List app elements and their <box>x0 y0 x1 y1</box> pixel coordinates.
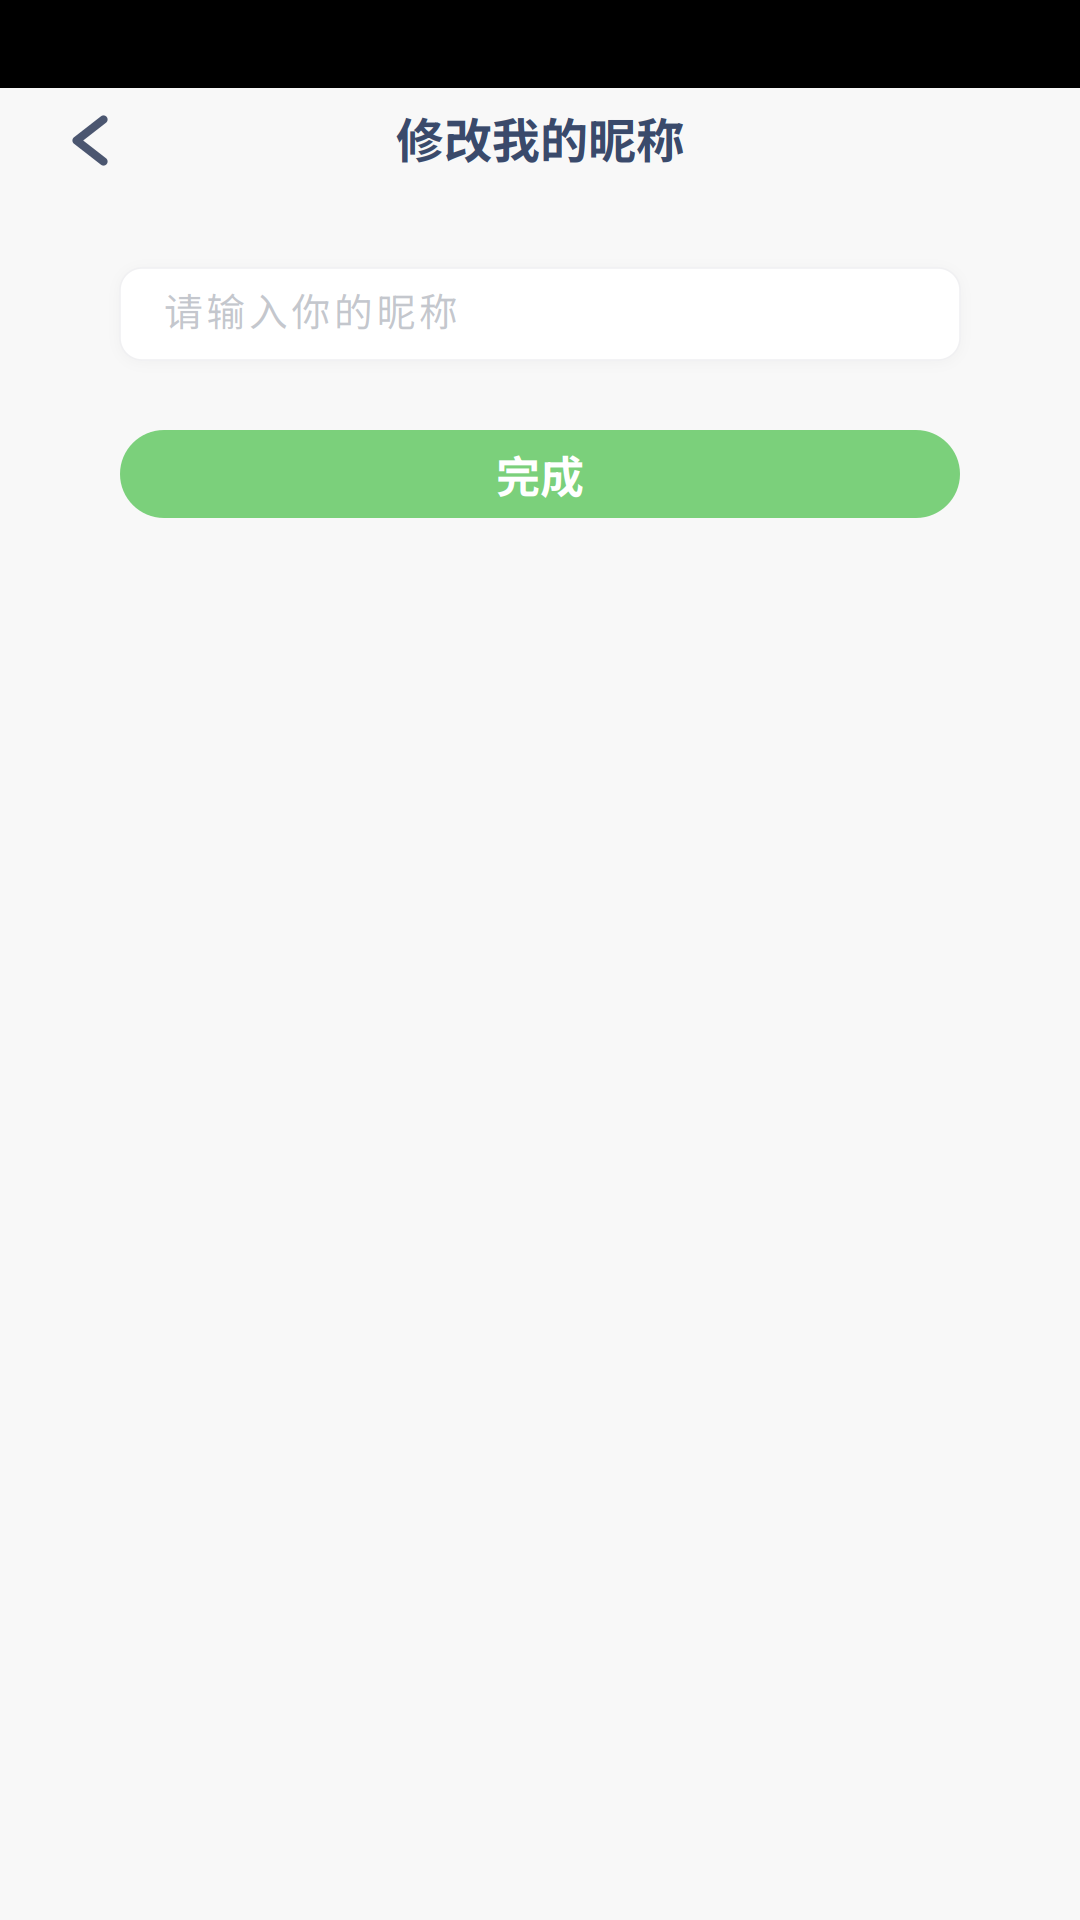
staticText: 请输入你的昵称 <box>164 281 458 337</box>
staticText: 修改我的昵称 <box>396 103 684 172</box>
staticText: 完成 <box>496 442 584 506</box>
button[interactable]: 返回 <box>45 88 135 193</box>
button[interactable]: 完成 <box>120 430 960 518</box>
button[interactable]: 请输入你的昵称 <box>120 268 960 360</box>
